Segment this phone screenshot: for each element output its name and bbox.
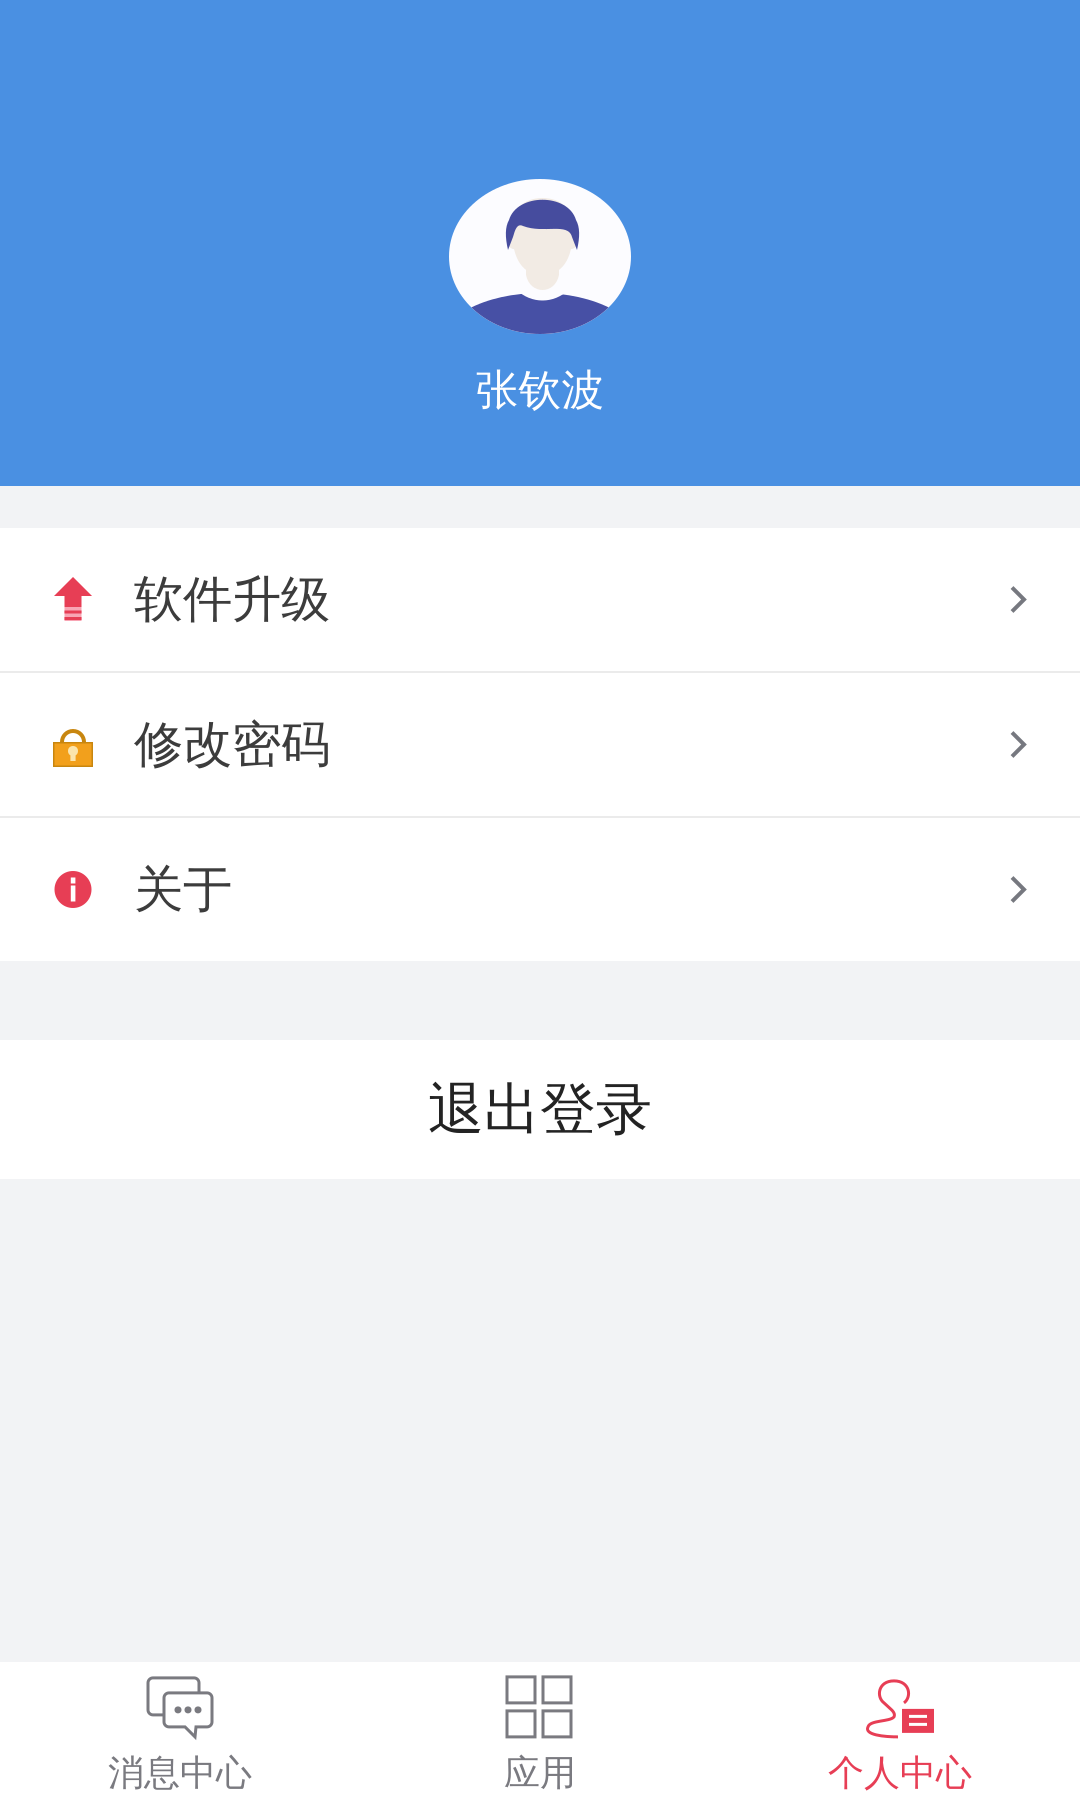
staticText: 软件升级 (134, 569, 330, 630)
staticText: 退出登录 (428, 1075, 652, 1144)
staticText: 张钦波 (475, 364, 604, 416)
staticText: 关于 (134, 859, 232, 920)
button[interactable]: 修改密码 (0, 673, 1080, 816)
button[interactable]: 退出登录 (0, 1040, 1080, 1179)
button[interactable]: 消息中心 (0, 1662, 360, 1800)
button[interactable]: 关于 (0, 818, 1080, 961)
staticText: 个人中心 (828, 1751, 972, 1795)
staticText: 应用 (504, 1751, 576, 1795)
button[interactable]: 软件升级 (0, 528, 1080, 671)
staticText: 消息中心 (108, 1751, 252, 1795)
button[interactable]: 个人中心 (720, 1662, 1080, 1800)
button[interactable]: 应用 (360, 1662, 720, 1800)
staticText: 修改密码 (134, 714, 330, 775)
